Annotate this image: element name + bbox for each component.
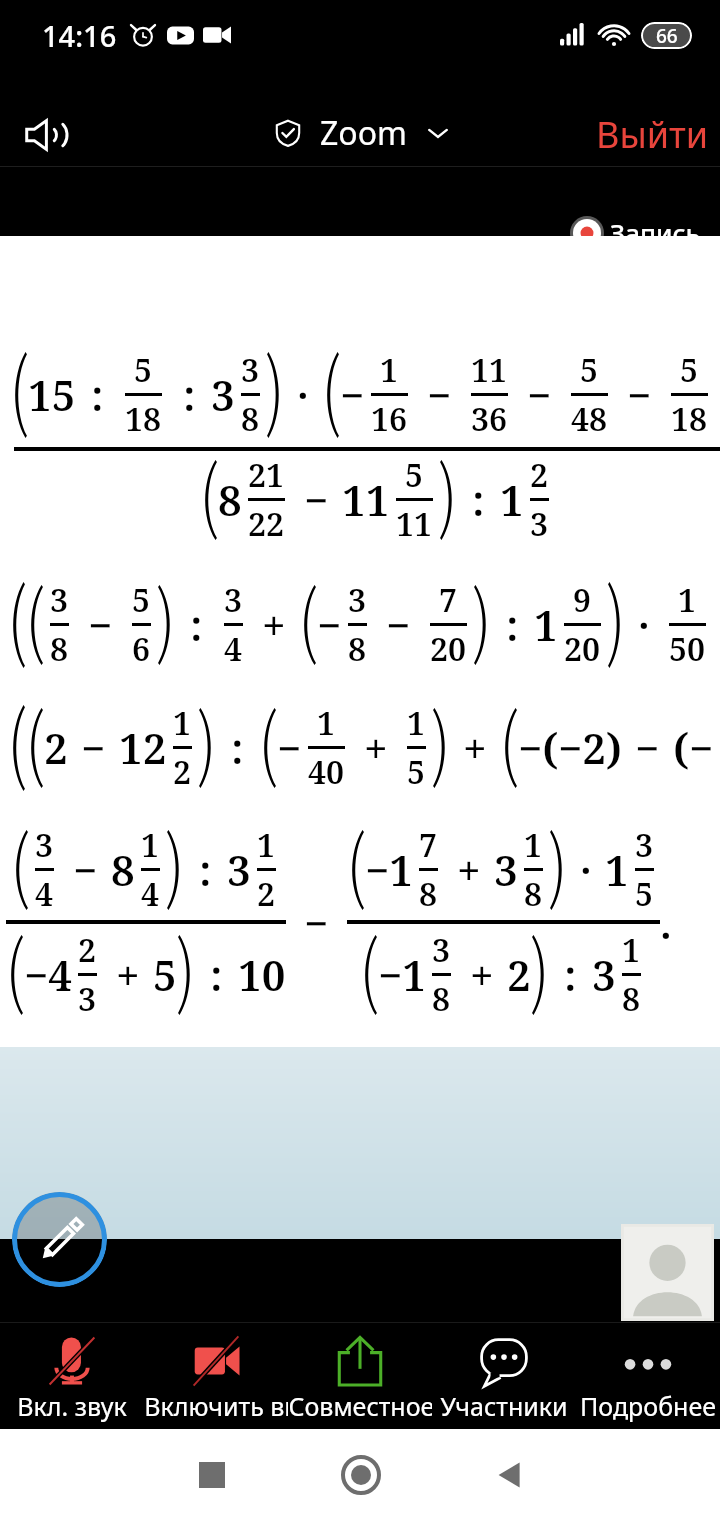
staticText: 8 [524,872,543,916]
staticText: : [199,841,212,898]
staticText: 1 [678,578,697,622]
button[interactable]: Back [464,1429,555,1520]
staticText: 2 [530,453,549,497]
staticText: 66 [656,23,678,49]
staticText: − [427,366,452,423]
staticText: −1 [365,841,413,898]
staticText: − [317,596,342,653]
staticText: 11 [396,502,433,546]
staticText: 1 [141,823,160,867]
staticText: 1 [500,471,524,528]
staticText: 11 [342,471,390,528]
button[interactable]: Участники [432,1322,576,1423]
staticText: 2 [507,946,531,1003]
staticText: 8 [348,627,367,671]
button[interactable]: Recents [166,1429,257,1520]
staticText: 5 [134,348,153,392]
staticText: 6 [132,627,151,671]
staticText: 2 [257,872,276,916]
staticText: 8 [419,872,438,916]
staticText: − [527,366,552,423]
staticText: 3 [50,578,69,622]
staticText: 14:16 [42,16,117,55]
staticText: + [116,946,140,1003]
staticText: 8 [111,841,135,898]
staticText: Совместное исп. [288,1389,432,1423]
staticText: · [297,366,309,423]
staticText: 1 [524,823,543,867]
staticText: 2 [78,928,97,972]
button[interactable]: Annotate [12,1192,107,1287]
staticText: (− [673,719,714,776]
staticText: 1 [257,823,276,867]
staticText: 50 [669,627,706,671]
staticText: − [627,366,652,423]
staticText: : [564,946,577,1003]
staticText: : [183,366,196,423]
staticText: 1 [317,701,336,745]
staticText: 3 [211,366,235,423]
staticText: + [262,596,286,653]
button[interactable]: Home [315,1429,406,1520]
staticText: 3 [78,977,97,1021]
staticText: 4 [35,872,54,916]
staticText: 18 [671,397,708,441]
staticText: − [81,719,106,776]
staticText: − [73,841,98,898]
staticText: : [210,946,223,1003]
button[interactable]: Participant [621,1224,714,1321]
staticText: 1 [622,928,641,972]
staticText: 3 [530,502,549,546]
staticText: 1 [407,701,426,745]
staticText: : [190,596,203,653]
staticText: 48 [571,397,608,441]
staticText: 8 [622,977,641,1021]
staticText: 8 [432,977,451,1021]
staticText: 7 [419,823,438,867]
staticText: 3 [224,578,243,622]
button[interactable]: Совместное исп. [288,1322,432,1423]
staticText: Zoom [320,111,407,155]
staticText: 11 [471,348,508,392]
staticText: : [472,471,485,528]
staticText: Выйти [596,110,709,159]
button[interactable]: Вкл. звук [0,1322,144,1423]
staticText: + [364,719,388,776]
button[interactable]: Выйти [586,104,719,165]
button[interactable]: Подробнее [576,1322,720,1423]
staticText: 2 [44,719,68,776]
staticText: 18 [125,397,162,441]
staticText: 15 [28,366,76,423]
staticText: 20 [430,627,467,671]
staticText: −4 [24,946,72,1003]
staticText: − [304,894,329,951]
staticText: 3 [635,823,654,867]
staticText: 40 [308,750,345,794]
staticText: − [304,471,329,528]
staticText: + [470,946,494,1003]
staticText: Участники [432,1389,576,1423]
staticText: 3 [494,841,518,898]
staticText: : [91,366,104,423]
staticText: − [340,366,365,423]
staticText: 3 [592,946,616,1003]
staticText: 4 [141,872,160,916]
staticText: : [231,719,244,776]
staticText: 20 [564,627,601,671]
staticText: 2 [173,750,192,794]
staticText: 8 [241,397,260,441]
staticText: . [660,894,672,951]
staticText: − [277,719,302,776]
staticText: 3 [35,823,54,867]
staticText: 5 [405,453,424,497]
button[interactable]: Zoom [268,105,455,161]
staticText: −(−2) [518,719,622,776]
staticText: 5 [580,348,599,392]
staticText: 1 [534,596,558,653]
staticText: − [386,596,411,653]
button[interactable]: Включить видео [144,1322,288,1423]
button[interactable]: Speaker [8,105,80,165]
staticText: 22 [248,502,285,546]
staticText: 3 [432,928,451,972]
staticText: Подробнее [576,1389,720,1423]
